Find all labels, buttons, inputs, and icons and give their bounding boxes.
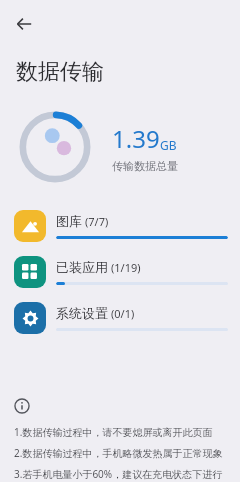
staticText: 1.数据传输过程中，请不要熄屏或离开此页面: [14, 425, 213, 439]
staticText: (0/1): [111, 306, 135, 321]
staticText: 图库: [56, 213, 82, 229]
staticText: 已装应用: [56, 259, 108, 275]
staticText: (1/19): [111, 260, 141, 275]
button[interactable]: 已装应用: [0, 254, 240, 290]
button[interactable]: Back: [8, 8, 40, 40]
staticText: 2.数据传输过程中，手机略微发热属于正常现象: [14, 446, 223, 460]
button[interactable]: 图库: [0, 208, 240, 244]
staticText: 数据传输: [16, 58, 104, 86]
staticText: 1.39: [112, 122, 160, 155]
staticText: 系统设置: [56, 305, 108, 321]
button[interactable]: 系统设置: [0, 300, 240, 336]
staticText: 传输数据总量: [112, 159, 178, 173]
staticText: 3.若手机电量小于60%，建议在充电状态下进行: [14, 467, 223, 481]
staticText: GB: [160, 137, 177, 153]
staticText: (7/7): [85, 214, 109, 229]
